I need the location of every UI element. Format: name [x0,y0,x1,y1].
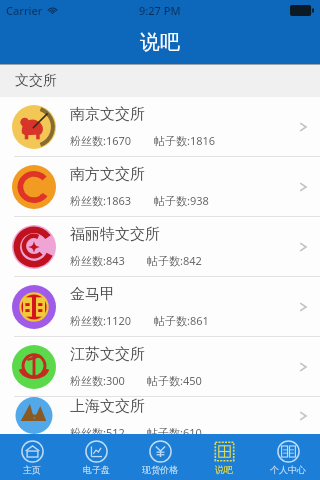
button[interactable]: 金马甲 [0,277,320,336]
staticText: 帖子数:938 [154,193,209,208]
staticText: 文交所 [15,72,57,90]
staticText: 帖子数:861 [154,313,209,328]
staticText: 粉丝数:1863 [70,193,132,208]
staticText: Carrier [6,3,43,18]
staticText: 粉丝数:1670 [70,133,132,148]
staticText: 9:27 PM [139,3,181,18]
button[interactable]: 福丽特文交所 [0,217,320,276]
staticText: 南方文交所 [70,165,145,184]
staticText: 主页 [23,464,41,475]
staticText: 粉丝数:843 [70,253,125,268]
staticText: 粉丝数:300 [70,373,125,388]
staticText: 说吧 [140,30,180,55]
staticText: 现货价格 [142,464,178,475]
button[interactable]: 主页 [0,434,64,480]
staticText: 帖子数:1816 [154,133,216,148]
staticText: 粉丝数:1120 [70,313,132,328]
button[interactable]: 南方文交所 [0,157,320,216]
staticText: 江苏文交所 [70,345,145,364]
button[interactable]: 南京文交所 [0,97,320,156]
staticText: 电子盘 [83,464,110,475]
staticText: 帖子数:450 [147,373,202,388]
staticText: 粉丝数:512 [70,425,125,434]
staticText: 金马甲 [70,285,115,304]
staticText: 说吧 [215,464,233,475]
button[interactable]: 个人中心 [256,434,320,480]
staticText: 帖子数:842 [147,253,202,268]
button[interactable]: 说吧 [192,434,256,480]
staticText: 上海文交所 [70,397,145,416]
staticText: 帖子数:610 [147,425,202,434]
button[interactable]: 上海文交所 [0,397,320,434]
staticText: 个人中心 [270,464,306,475]
staticText: 福丽特文交所 [70,225,160,244]
staticText: 南京文交所 [70,105,145,124]
button[interactable]: 江苏文交所 [0,337,320,396]
button[interactable]: 现货价格 [128,434,192,480]
button[interactable]: 电子盘 [64,434,128,480]
